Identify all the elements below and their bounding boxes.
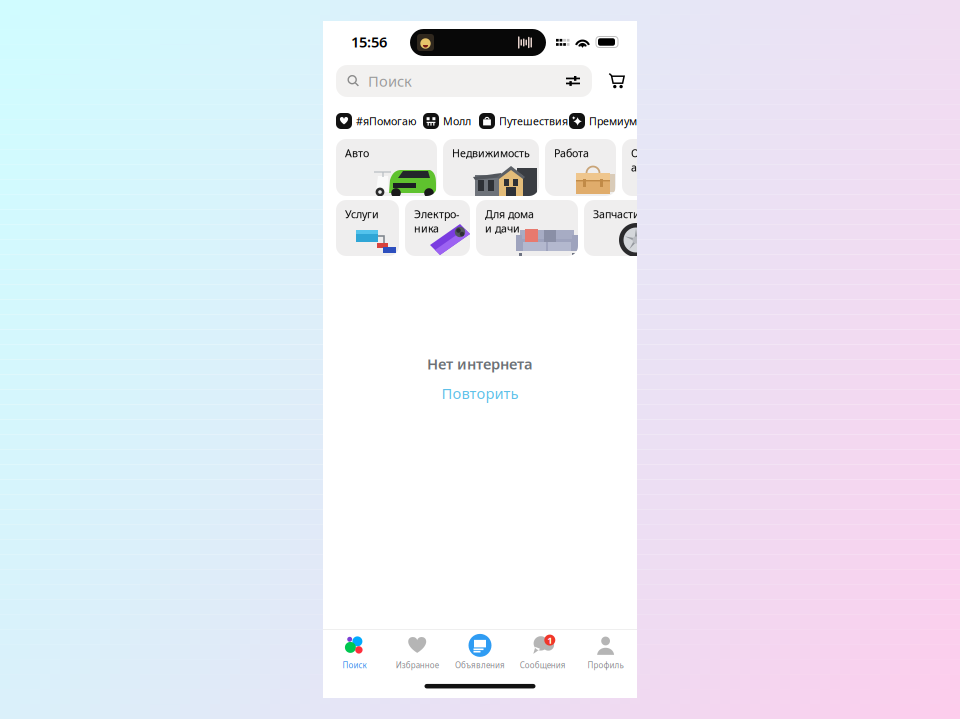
button[interactable]: Поиск xyxy=(323,630,386,675)
staticText: Объявления xyxy=(455,660,505,670)
button[interactable]: Путешествия xyxy=(479,113,568,129)
staticText: #яПомогаю xyxy=(356,114,417,128)
staticText: Недвижимость xyxy=(452,146,530,160)
staticText: Избранное xyxy=(396,660,439,670)
staticText: Одежда, аксессуары xyxy=(631,146,688,174)
button[interactable]: Объявления xyxy=(449,630,511,675)
staticText: Авто xyxy=(345,146,369,160)
staticText: 1 xyxy=(547,634,552,646)
button[interactable]: Корзина xyxy=(605,69,629,93)
button[interactable]: #яПомогаю xyxy=(336,113,417,129)
button[interactable]: Молл xyxy=(423,113,471,129)
staticText: Поиск xyxy=(368,71,412,91)
button[interactable]: Поиск xyxy=(336,65,592,97)
staticText: Сообщения xyxy=(520,660,566,670)
staticText: Электро- ника xyxy=(414,207,459,235)
button[interactable]: Премиум xyxy=(569,113,637,129)
staticText: Путешествия xyxy=(499,114,568,128)
button[interactable]: Для дома и дачи xyxy=(476,200,578,256)
button[interactable]: Авто xyxy=(336,139,437,196)
button[interactable]: Запчасти xyxy=(584,200,655,256)
button[interactable]: Избранное xyxy=(386,630,449,675)
staticText: Нет интернета xyxy=(427,354,533,373)
button[interactable]: Недвижимость xyxy=(443,139,539,196)
staticText: Поиск xyxy=(342,660,366,670)
button[interactable]: 1 xyxy=(511,630,574,675)
button[interactable]: Работа xyxy=(545,139,616,196)
staticText: Для дома и дачи xyxy=(485,207,534,235)
button[interactable]: Одежда, аксессуары xyxy=(622,139,693,196)
staticText: Молл xyxy=(443,114,471,128)
button[interactable]: Услуги xyxy=(336,200,399,256)
staticText: 15:56 xyxy=(351,32,387,51)
button[interactable]: Электро- ника xyxy=(405,200,470,256)
button[interactable]: Профиль xyxy=(574,630,637,675)
staticText: Профиль xyxy=(588,660,624,670)
staticText: Запчасти xyxy=(593,207,640,221)
staticText: Повторить xyxy=(441,383,518,403)
staticText: Премиум xyxy=(589,114,637,128)
staticText: Работа xyxy=(554,146,589,160)
button[interactable]: Повторить xyxy=(441,383,518,403)
staticText: Услуги xyxy=(345,207,379,221)
